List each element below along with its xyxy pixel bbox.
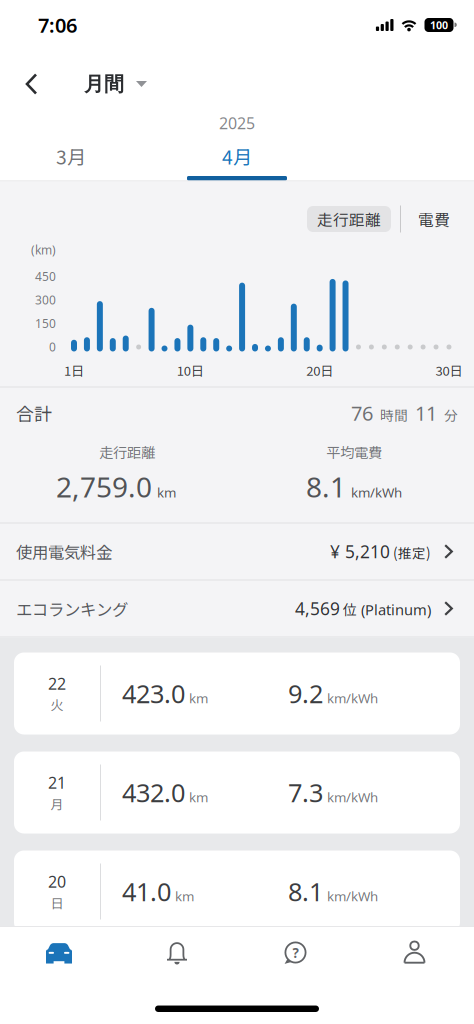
staticText: 4,569 bbox=[295, 597, 340, 620]
staticText: 走行距離 bbox=[317, 208, 381, 230]
staticText: 合計 bbox=[16, 400, 52, 426]
staticText: 41.0 bbox=[122, 875, 171, 908]
staticText: 電費 bbox=[418, 207, 450, 230]
staticText: ¥ 5,210 bbox=[330, 540, 390, 563]
staticText: 150 bbox=[35, 315, 56, 331]
staticText: 月 bbox=[50, 794, 63, 813]
button[interactable] bbox=[0, 931, 118, 975]
staticText: km/kWh bbox=[327, 788, 378, 806]
button[interactable]: ? bbox=[236, 931, 355, 975]
button[interactable] bbox=[355, 931, 474, 975]
staticText: 3月 bbox=[56, 142, 86, 170]
staticText: 300 bbox=[35, 292, 56, 308]
button[interactable] bbox=[118, 931, 236, 975]
button[interactable]: 電費 bbox=[418, 207, 450, 230]
staticText: km bbox=[189, 788, 208, 806]
staticText: 11 bbox=[415, 400, 437, 426]
staticText: 20日 bbox=[306, 360, 333, 379]
button[interactable]: 20 bbox=[14, 850, 460, 932]
staticText: km bbox=[175, 887, 194, 905]
staticText: 21 bbox=[48, 772, 66, 793]
button[interactable]: 月間 bbox=[38, 71, 147, 97]
staticText: km/kWh bbox=[351, 484, 402, 501]
staticText: 8.1 bbox=[306, 468, 346, 505]
staticText: 火 bbox=[50, 695, 63, 714]
staticText: (Platinum) bbox=[357, 600, 431, 619]
staticText: 1日 bbox=[64, 360, 84, 379]
staticText: エコランキング bbox=[16, 597, 128, 620]
staticText: 2,759.0 bbox=[56, 468, 152, 505]
staticText: 平均電費 bbox=[326, 441, 382, 462]
staticText: 8.1 bbox=[288, 875, 323, 908]
button[interactable]: エコランキング bbox=[0, 580, 474, 636]
staticText: 0 bbox=[49, 339, 56, 355]
staticText: (推定) bbox=[390, 542, 431, 562]
staticText: 432.0 bbox=[122, 776, 185, 809]
staticText: 423.0 bbox=[122, 677, 185, 710]
button[interactable]: 4月 bbox=[187, 136, 287, 176]
staticText: (km) bbox=[31, 242, 56, 258]
staticText: 76 bbox=[351, 400, 373, 426]
button[interactable] bbox=[0, 73, 38, 94]
staticText: 時間 bbox=[380, 405, 408, 425]
staticText: ? bbox=[292, 944, 298, 962]
staticText: 7:06 bbox=[38, 12, 77, 38]
staticText: 22 bbox=[48, 673, 66, 694]
staticText: 分 bbox=[444, 405, 458, 425]
button[interactable]: 使用電気料金 bbox=[0, 523, 474, 579]
staticText: 走行距離 bbox=[99, 441, 155, 462]
staticText: km bbox=[157, 484, 176, 501]
staticText: 日 bbox=[50, 893, 63, 912]
staticText: 4月 bbox=[222, 142, 252, 170]
staticText: 450 bbox=[35, 268, 56, 284]
button[interactable]: 走行距離 bbox=[307, 206, 391, 232]
staticText: 100 bbox=[430, 18, 448, 32]
staticText: 月間 bbox=[84, 71, 124, 97]
button[interactable]: 21 bbox=[14, 751, 460, 833]
staticText: 使用電気料金 bbox=[16, 540, 112, 563]
staticText: km/kWh bbox=[327, 689, 378, 707]
staticText: 9.2 bbox=[288, 677, 323, 710]
staticText: 7.3 bbox=[288, 776, 323, 809]
staticText: 30日 bbox=[435, 360, 462, 379]
button[interactable]: 3月 bbox=[21, 136, 121, 176]
staticText: 20 bbox=[48, 871, 66, 892]
staticText: 10日 bbox=[177, 360, 204, 379]
staticText: 2025 bbox=[219, 112, 255, 134]
staticText: km bbox=[189, 689, 208, 707]
staticText: km/kWh bbox=[327, 887, 378, 905]
button[interactable]: 22 bbox=[14, 652, 460, 734]
staticText: 位 bbox=[340, 599, 357, 619]
